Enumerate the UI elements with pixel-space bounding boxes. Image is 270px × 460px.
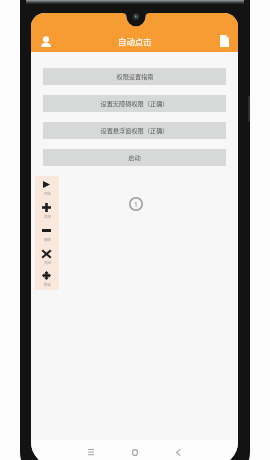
staticText: 设置悬浮窗权限（正确）: [100, 126, 169, 135]
button[interactable]: 设置无障碍权限（正确）: [43, 95, 226, 112]
staticText: 开始: [44, 191, 51, 196]
staticText: 1: [134, 200, 138, 209]
staticText: 删除: [44, 237, 51, 242]
button[interactable]: Document: [211, 27, 238, 55]
button[interactable]: 添加: [35, 199, 59, 222]
button[interactable]: Home: [129, 446, 141, 458]
button[interactable]: 权限设置指南: [43, 68, 226, 85]
button[interactable]: Account: [31, 27, 60, 55]
button[interactable]: 开始: [35, 176, 59, 199]
button[interactable]: Recents: [85, 446, 97, 458]
staticText: 移动: [44, 282, 51, 287]
staticText: 关闭: [44, 260, 51, 265]
button[interactable]: 启动: [43, 149, 226, 166]
staticText: 设置无障碍权限（正确）: [100, 99, 169, 108]
staticText: 启动: [128, 153, 141, 162]
button[interactable]: 移动: [35, 268, 59, 290]
button[interactable]: 删除: [35, 222, 59, 245]
staticText: 自动点击: [118, 35, 152, 47]
button[interactable]: 设置悬浮窗权限（正确）: [43, 122, 226, 139]
button[interactable]: 关闭: [35, 245, 59, 268]
staticText: 添加: [44, 214, 51, 219]
staticText: 权限设置指南: [116, 72, 154, 81]
button[interactable]: Back: [172, 446, 184, 458]
